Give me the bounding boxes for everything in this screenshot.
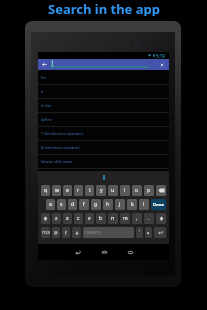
- button[interactable]: g: [91, 199, 101, 210]
- button[interactable]: if: [38, 85, 169, 99]
- button[interactable]: v: [85, 213, 94, 224]
- button[interactable]: o: [132, 185, 142, 196]
- button[interactable]: u: [108, 185, 118, 196]
- button[interactable]: c: [74, 213, 83, 224]
- staticText: define: [41, 117, 52, 122]
- staticText: ?123: [42, 230, 50, 235]
- button[interactable]: ,: [132, 213, 142, 224]
- button[interactable]: * (dereference operator): [38, 127, 169, 141]
- button[interactable]: m: [120, 213, 130, 224]
- staticText: 5:19: [156, 53, 165, 59]
- staticText: s: [60, 201, 63, 208]
- staticText: if-else: [41, 103, 52, 108]
- button[interactable]: Home: [97, 246, 111, 259]
- staticText: if: [41, 89, 44, 94]
- button[interactable]: i: [120, 185, 130, 196]
- staticText: b: [99, 215, 103, 222]
- staticText: @: [54, 230, 58, 235]
- staticText: f: [65, 230, 67, 236]
- staticText: Done: [153, 202, 164, 208]
- staticText: m: [123, 215, 128, 222]
- staticText: g: [94, 201, 98, 208]
- button[interactable]: emoji: [52, 227, 60, 238]
- staticText: j: [119, 201, 121, 208]
- staticText: ': [139, 229, 141, 236]
- button[interactable]: Shift: [41, 213, 50, 224]
- button[interactable]: d: [68, 199, 77, 210]
- button[interactable]: Back: [71, 246, 85, 259]
- staticText: d: [71, 201, 75, 208]
- staticText: ,: [136, 215, 138, 222]
- staticText: r: [77, 187, 80, 194]
- staticText: ▪: [147, 231, 150, 234]
- button[interactable]: for: [38, 71, 169, 85]
- button[interactable]: n: [108, 213, 118, 224]
- staticText: q: [44, 187, 48, 194]
- button[interactable]: w: [52, 185, 61, 196]
- button[interactable]: Backspace: [156, 185, 166, 196]
- button[interactable]: a: [46, 199, 55, 210]
- button[interactable]: h: [103, 199, 113, 210]
- button[interactable]: if-else: [38, 99, 169, 113]
- button[interactable]: z: [52, 213, 61, 224]
- staticText: p: [147, 187, 151, 194]
- button[interactable]: s: [57, 199, 66, 210]
- staticText: n: [111, 215, 115, 222]
- staticText: z: [55, 215, 58, 222]
- staticText: for: [41, 75, 47, 80]
- staticText: .: [148, 215, 150, 222]
- staticText: y: [100, 187, 103, 194]
- button[interactable]: Clear query: [154, 59, 169, 70]
- staticText: bitwise shift move: [41, 159, 73, 164]
- button[interactable]: apostrophe: [136, 227, 143, 238]
- staticText: a: [49, 201, 52, 208]
- button[interactable]: Space: [83, 227, 134, 238]
- button[interactable]: Recent apps: [123, 246, 137, 259]
- staticText: e: [66, 187, 69, 194]
- staticText: l: [143, 201, 145, 208]
- button[interactable]: b: [96, 213, 106, 224]
- button[interactable]: k: [127, 199, 137, 210]
- staticText: f: [83, 201, 85, 208]
- button[interactable]: period: [145, 227, 152, 238]
- button[interactable]: bitwise shift move: [38, 155, 169, 169]
- staticText: Search in the app: [48, 0, 160, 16]
- button[interactable]: mic: [72, 227, 81, 238]
- button[interactable]: & (reference operator): [38, 141, 169, 155]
- staticText: i: [124, 187, 126, 194]
- button[interactable]: j: [115, 199, 125, 210]
- button[interactable]: ?123: [41, 227, 50, 238]
- staticText: x: [66, 215, 69, 222]
- button[interactable]: Navigate up: [38, 59, 50, 70]
- staticText: t: [89, 187, 91, 194]
- staticText: w: [55, 187, 59, 194]
- button[interactable]: e: [63, 185, 72, 196]
- button[interactable]: p: [144, 185, 154, 196]
- staticText: u: [111, 187, 115, 194]
- button[interactable]: l: [139, 199, 149, 210]
- staticText: & (reference operator): [41, 145, 80, 150]
- staticText: k: [131, 201, 134, 208]
- button[interactable]: Done: [151, 199, 166, 210]
- staticText: * (dereference operator): [41, 131, 84, 136]
- staticText: QWERTY: [85, 230, 102, 235]
- button[interactable]: enter: [154, 227, 166, 238]
- button[interactable]: y: [96, 185, 106, 196]
- staticText: c: [77, 215, 80, 222]
- button[interactable]: .: [144, 213, 154, 224]
- button[interactable]: define: [38, 113, 169, 127]
- staticText: h: [106, 201, 110, 208]
- button[interactable]: q: [41, 185, 50, 196]
- button[interactable]: [50, 59, 154, 70]
- button[interactable]: r: [74, 185, 83, 196]
- button[interactable]: f: [79, 199, 89, 210]
- button[interactable]: t: [85, 185, 94, 196]
- staticText: v: [88, 215, 91, 222]
- button[interactable]: Shift right: [156, 213, 166, 224]
- button[interactable]: x: [63, 213, 72, 224]
- button[interactable]: ime: [62, 227, 70, 238]
- staticText: o: [135, 187, 139, 194]
